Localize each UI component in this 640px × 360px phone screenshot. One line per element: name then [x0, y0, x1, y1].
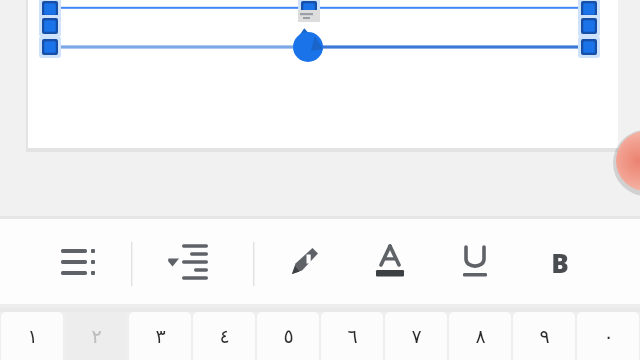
button[interactable]: ٠: [577, 312, 639, 360]
button[interactable]: ١: [1, 312, 63, 360]
button[interactable]: ٨: [449, 312, 511, 360]
staticText: ٤: [219, 325, 230, 347]
button[interactable]: Underline: [451, 238, 499, 286]
button[interactable]: Bold: [536, 238, 584, 286]
button[interactable]: ٩: [513, 312, 575, 360]
staticText: ٥: [283, 325, 294, 347]
button[interactable]: Text colour: [366, 238, 414, 286]
button[interactable]: ٣: [129, 312, 191, 360]
button[interactable]: Highlight: [281, 238, 329, 286]
staticText: ٧: [411, 325, 422, 347]
staticText: ٠: [603, 325, 614, 347]
staticText: ٩: [539, 325, 550, 347]
staticText: ٦: [347, 325, 358, 347]
button[interactable]: ٥: [257, 312, 319, 360]
staticText: ٣: [155, 325, 166, 347]
staticText: ١: [27, 325, 38, 347]
button[interactable]: ٤: [193, 312, 255, 360]
staticText: ٢: [91, 325, 102, 347]
button[interactable]: ٦: [321, 312, 383, 360]
staticText: B: [551, 245, 569, 280]
button[interactable]: Bulleted list: [56, 238, 104, 286]
button[interactable]: ٢: [65, 312, 127, 360]
staticText: ٨: [475, 325, 486, 347]
button[interactable]: Line spacing: [168, 238, 216, 286]
button[interactable]: ٧: [385, 312, 447, 360]
